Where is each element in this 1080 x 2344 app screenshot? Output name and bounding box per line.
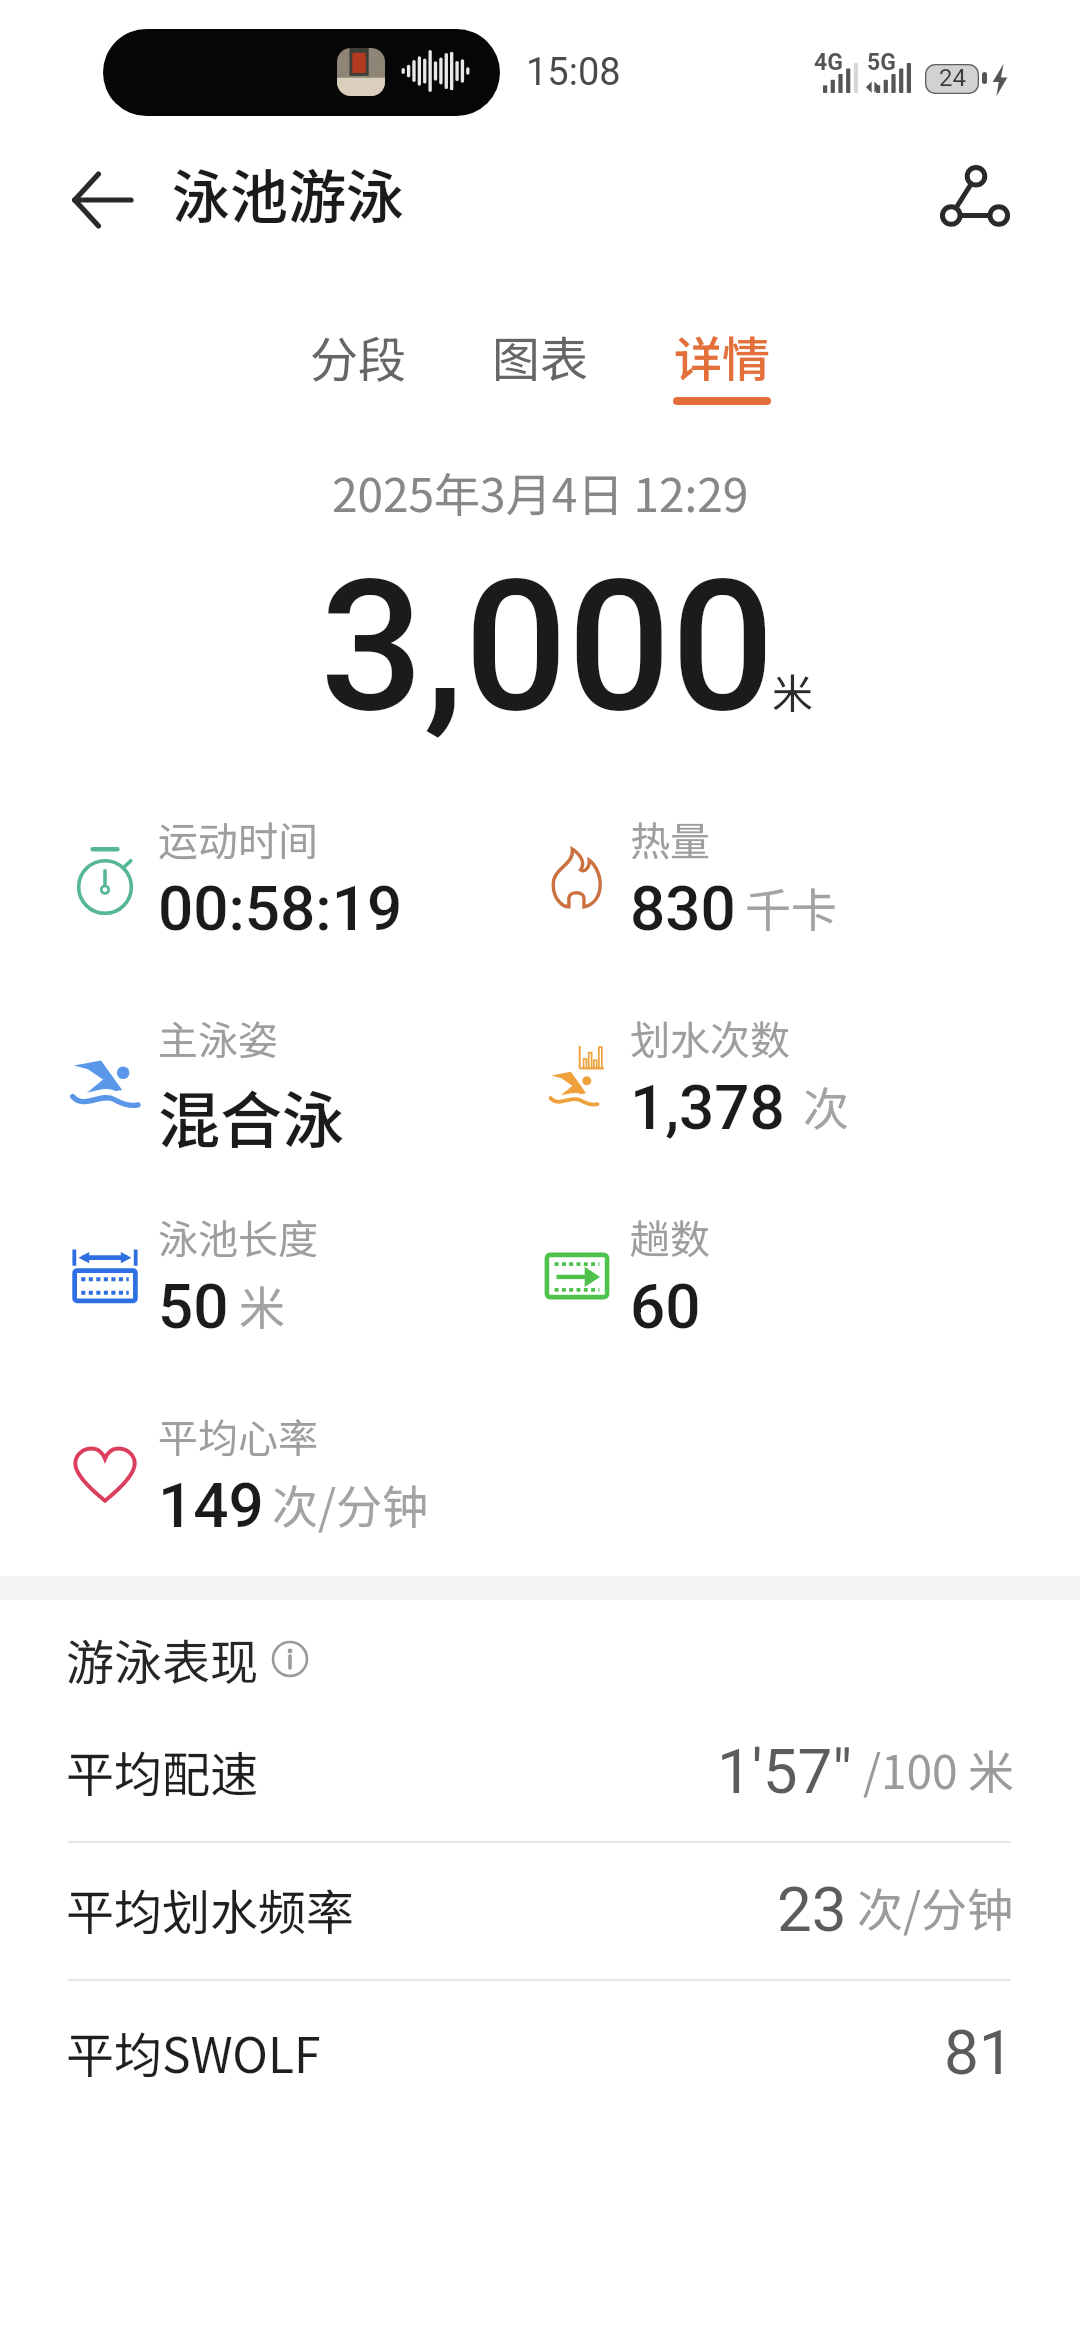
staticText: 1'57" [717, 1735, 853, 1808]
staticText: 平均SWOLF [66, 2017, 321, 2087]
staticText: 00:58:19 [158, 872, 403, 945]
staticText: 60 [630, 1270, 701, 1343]
button[interactable]: Info [267, 1636, 313, 1682]
staticText: 平均划水频率 [66, 1874, 355, 1944]
staticText: 分段 [310, 321, 407, 391]
staticText: 详情 [674, 321, 771, 391]
staticText: 热量 [630, 810, 710, 868]
staticText: 趟数 [630, 1208, 710, 1266]
staticText: 平均心率 [158, 1407, 318, 1465]
staticText: 划水次数 [630, 1009, 790, 1067]
staticText: 149 [158, 1469, 264, 1542]
staticText: 830 [630, 872, 736, 945]
staticText: 游泳表现 [66, 1624, 259, 1694]
staticText: 米 [239, 1272, 285, 1339]
staticText: 24 [939, 64, 966, 92]
staticText: 1,378 [630, 1071, 785, 1144]
staticText: 泳池长度 [158, 1208, 318, 1266]
button[interactable]: 平均配速 [0, 1706, 1080, 1836]
staticText: 50 [158, 1270, 229, 1343]
staticText: 米 [772, 661, 813, 720]
staticText: 平均配速 [66, 1736, 259, 1806]
staticText: 3,000 [320, 540, 775, 753]
button[interactable]: Share [928, 149, 1024, 245]
staticText: 次/分钟 [857, 1874, 1014, 1941]
staticText: 运动时间 [158, 810, 318, 868]
staticText: 混合泳 [158, 1071, 345, 1161]
button[interactable]: 分段 [285, 313, 431, 413]
staticText: 次 [803, 1073, 849, 1140]
staticText: 千卡 [745, 874, 837, 941]
staticText: 4G [814, 49, 843, 76]
button[interactable]: 详情 [649, 313, 795, 413]
staticText: 图表 [492, 321, 589, 391]
staticText: 2025年3月4日 12:29 [332, 459, 749, 526]
button[interactable]: 平均SWOLF [0, 1987, 1080, 2117]
staticText: 次/分钟 [272, 1471, 429, 1538]
staticText: 5G [867, 49, 896, 76]
staticText: /100 米 [863, 1736, 1014, 1803]
button[interactable]: Back [54, 152, 150, 248]
staticText: 81 [944, 2016, 1014, 2089]
staticText: 泳池游泳 [172, 151, 405, 235]
staticText: 23 [777, 1873, 847, 1946]
staticText: 主泳姿 [158, 1009, 278, 1067]
button[interactable]: 图表 [467, 313, 613, 413]
staticText: 15:08 [526, 50, 621, 95]
button[interactable]: 平均划水频率 [0, 1844, 1080, 1974]
